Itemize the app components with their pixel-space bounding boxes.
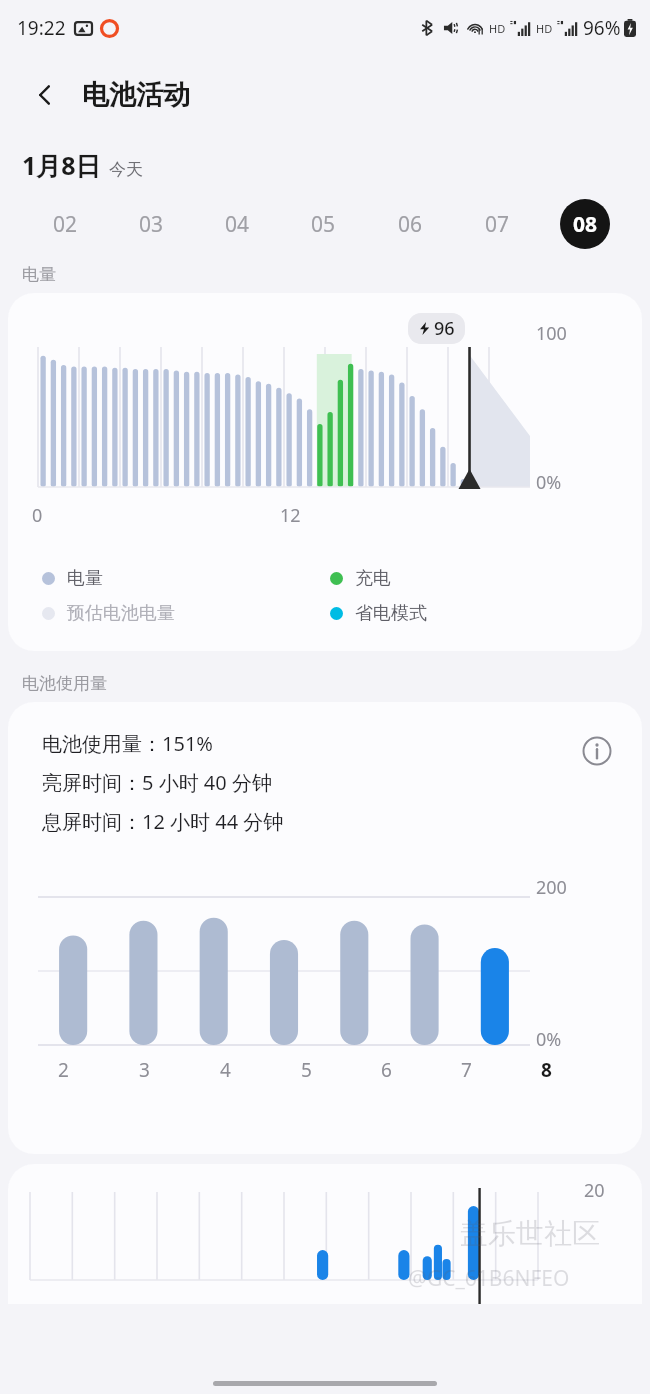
button[interactable]: 04 bbox=[194, 198, 280, 250]
staticText: 充电 bbox=[355, 567, 391, 590]
staticText: 4 bbox=[220, 1057, 231, 1083]
button[interactable]: 100 bbox=[8, 293, 642, 651]
staticText: 1月8日 bbox=[22, 148, 101, 182]
staticText: 亮屏时间：5 小时 40 分钟 bbox=[42, 769, 272, 796]
staticText: 电池使用量 bbox=[22, 673, 107, 694]
staticText: @GC_61B6NFEO bbox=[408, 1264, 570, 1293]
staticText: 0% bbox=[536, 1027, 562, 1052]
staticText: 0 bbox=[32, 503, 43, 528]
staticText: 盖乐世社区 bbox=[460, 1216, 600, 1251]
staticText: 05 bbox=[311, 210, 336, 239]
staticText: 5 bbox=[301, 1057, 312, 1083]
staticText: 今天 bbox=[109, 159, 143, 180]
staticText: 04 bbox=[225, 210, 250, 239]
button[interactable]: 充电 bbox=[330, 567, 618, 590]
button[interactable]: Info bbox=[576, 730, 618, 772]
staticText: 电量 bbox=[22, 264, 56, 285]
staticText: 6 bbox=[381, 1057, 392, 1083]
staticText: 100 bbox=[536, 321, 567, 346]
staticText: 96% bbox=[583, 15, 621, 41]
staticText: 19:22 bbox=[17, 15, 66, 41]
button[interactable]: 05 bbox=[280, 198, 367, 250]
staticText: 200 bbox=[536, 875, 567, 900]
staticText: 3 bbox=[139, 1057, 150, 1083]
staticText: 07 bbox=[485, 210, 510, 239]
button[interactable]: 08 bbox=[541, 198, 628, 250]
button[interactable]: 电量 bbox=[42, 567, 330, 590]
staticText: HD bbox=[489, 21, 506, 36]
button[interactable]: 预估电池电量 bbox=[42, 602, 330, 625]
staticText: 息屏时间：12 小时 44 分钟 bbox=[42, 808, 284, 835]
button[interactable]: 02 bbox=[22, 198, 108, 250]
staticText: 省电模式 bbox=[355, 602, 427, 625]
staticText: 2 bbox=[58, 1057, 69, 1083]
button[interactable]: 20 bbox=[8, 1164, 642, 1304]
staticText: 08 bbox=[573, 210, 598, 239]
button[interactable]: 03 bbox=[108, 198, 194, 250]
staticText: 06 bbox=[398, 210, 423, 239]
button[interactable]: 07 bbox=[454, 198, 541, 250]
staticText: 电池活动 bbox=[82, 78, 190, 112]
staticText: 7 bbox=[461, 1057, 472, 1083]
staticText: 03 bbox=[139, 210, 164, 239]
staticText: 02 bbox=[53, 210, 78, 239]
staticText: 电量 bbox=[67, 567, 103, 590]
staticText: 0% bbox=[536, 470, 562, 495]
button[interactable]: Back bbox=[22, 72, 68, 118]
staticText: HD bbox=[536, 21, 553, 36]
staticText: 96 bbox=[434, 316, 455, 341]
staticText: 8 bbox=[541, 1057, 552, 1083]
button[interactable]: 06 bbox=[367, 198, 454, 250]
staticText: 电池使用量：151% bbox=[42, 730, 213, 757]
staticText: 12 bbox=[280, 503, 301, 528]
button[interactable]: 省电模式 bbox=[330, 602, 618, 625]
button[interactable]: 电池使用量：151% bbox=[8, 702, 642, 1154]
staticText: 预估电池电量 bbox=[67, 602, 175, 625]
staticText: 20 bbox=[584, 1178, 605, 1203]
